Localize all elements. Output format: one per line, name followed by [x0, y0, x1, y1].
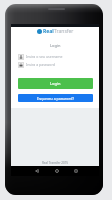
staticText: Transfer: [54, 28, 74, 35]
button[interactable]: Login: [18, 78, 93, 89]
staticText: Insira o seu username: [26, 54, 63, 59]
staticText: Login: [50, 43, 61, 48]
staticText: Real Transfer 2015: [42, 161, 69, 165]
staticText: Login: [50, 81, 61, 86]
button[interactable]: Home: [52, 166, 62, 176]
button[interactable]: Insira a password: [18, 61, 93, 68]
button[interactable]: Recents: [71, 166, 81, 176]
button[interactable]: Insira o seu username: [18, 53, 93, 60]
staticText: Insira a password: [26, 62, 55, 67]
staticText: Esqueceu a password?: [37, 96, 74, 101]
staticText: Real: [43, 28, 54, 35]
button[interactable]: Back: [32, 166, 42, 176]
button[interactable]: Esqueceu a password?: [18, 94, 93, 102]
